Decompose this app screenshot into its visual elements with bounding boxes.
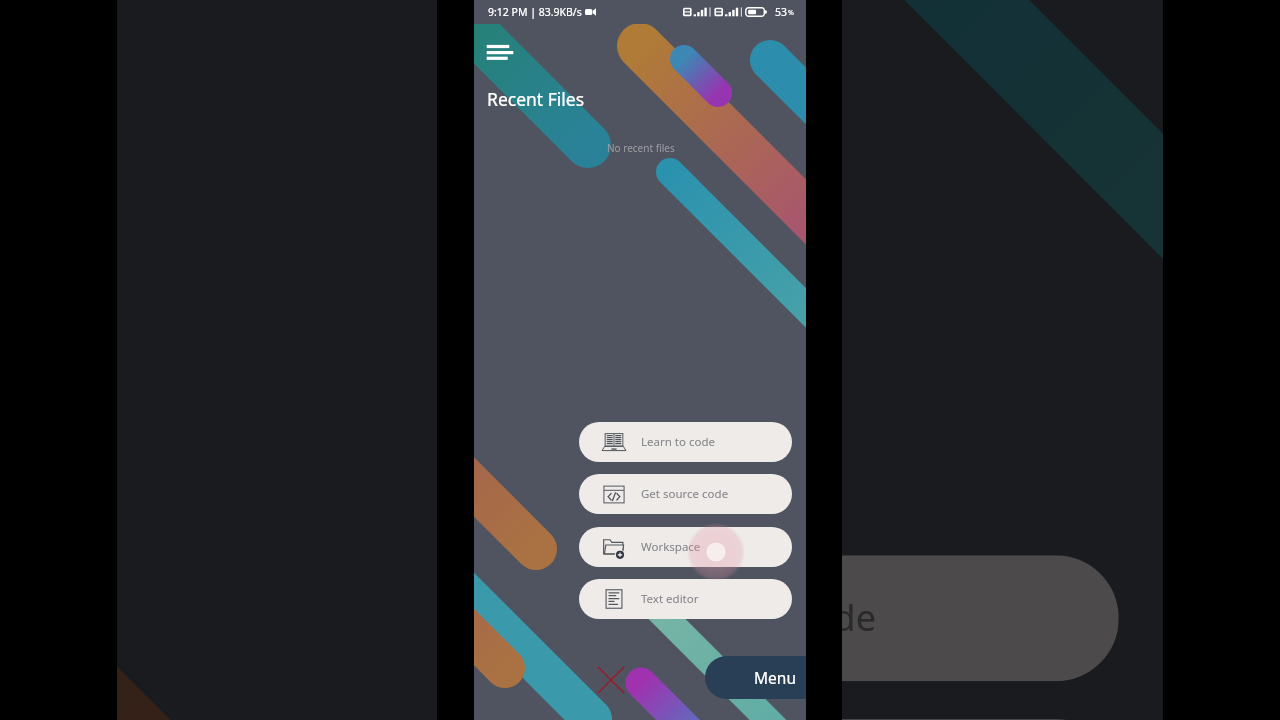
staticText: % — [788, 8, 794, 18]
button[interactable]: Menu — [705, 656, 806, 699]
button[interactable]: Learn to code — [448, 555, 1119, 681]
staticText: 9:12 PM | 83.9KB/s — [488, 5, 582, 19]
staticText: Workspace — [641, 539, 701, 555]
staticText: Recent Files — [487, 87, 585, 111]
button[interactable]: Get source code — [448, 719, 1119, 720]
staticText: Menu — [754, 667, 796, 688]
staticText: 53 — [775, 5, 788, 19]
staticText: Get source code — [641, 486, 729, 502]
staticText: No recent files — [607, 141, 675, 155]
button[interactable]: Learn to code — [579, 422, 792, 462]
button[interactable]: Workspace — [579, 527, 792, 567]
button[interactable]: Get source code — [579, 474, 792, 514]
button[interactable]: Open navigation menu — [476, 32, 528, 72]
staticText: Learn to code — [641, 434, 715, 450]
staticText: Learn to code — [643, 593, 876, 643]
staticText: Text editor — [641, 591, 699, 607]
button[interactable]: Text editor — [579, 579, 792, 619]
